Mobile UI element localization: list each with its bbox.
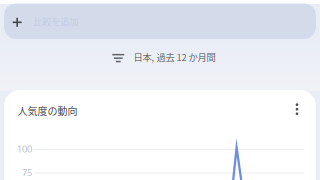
staticText: 人気度の動向 <box>18 103 78 118</box>
staticText: 比較を追加 <box>33 14 78 28</box>
button[interactable]: More options <box>283 95 311 123</box>
staticText: 日本, 過去 12 か月間 <box>134 50 216 64</box>
button[interactable]: 日本, 過去 12 か月間 <box>0 46 320 70</box>
staticText: 75 <box>22 166 32 179</box>
button[interactable]: 比較を追加 <box>4 3 316 39</box>
staticText: 100 <box>17 143 32 155</box>
